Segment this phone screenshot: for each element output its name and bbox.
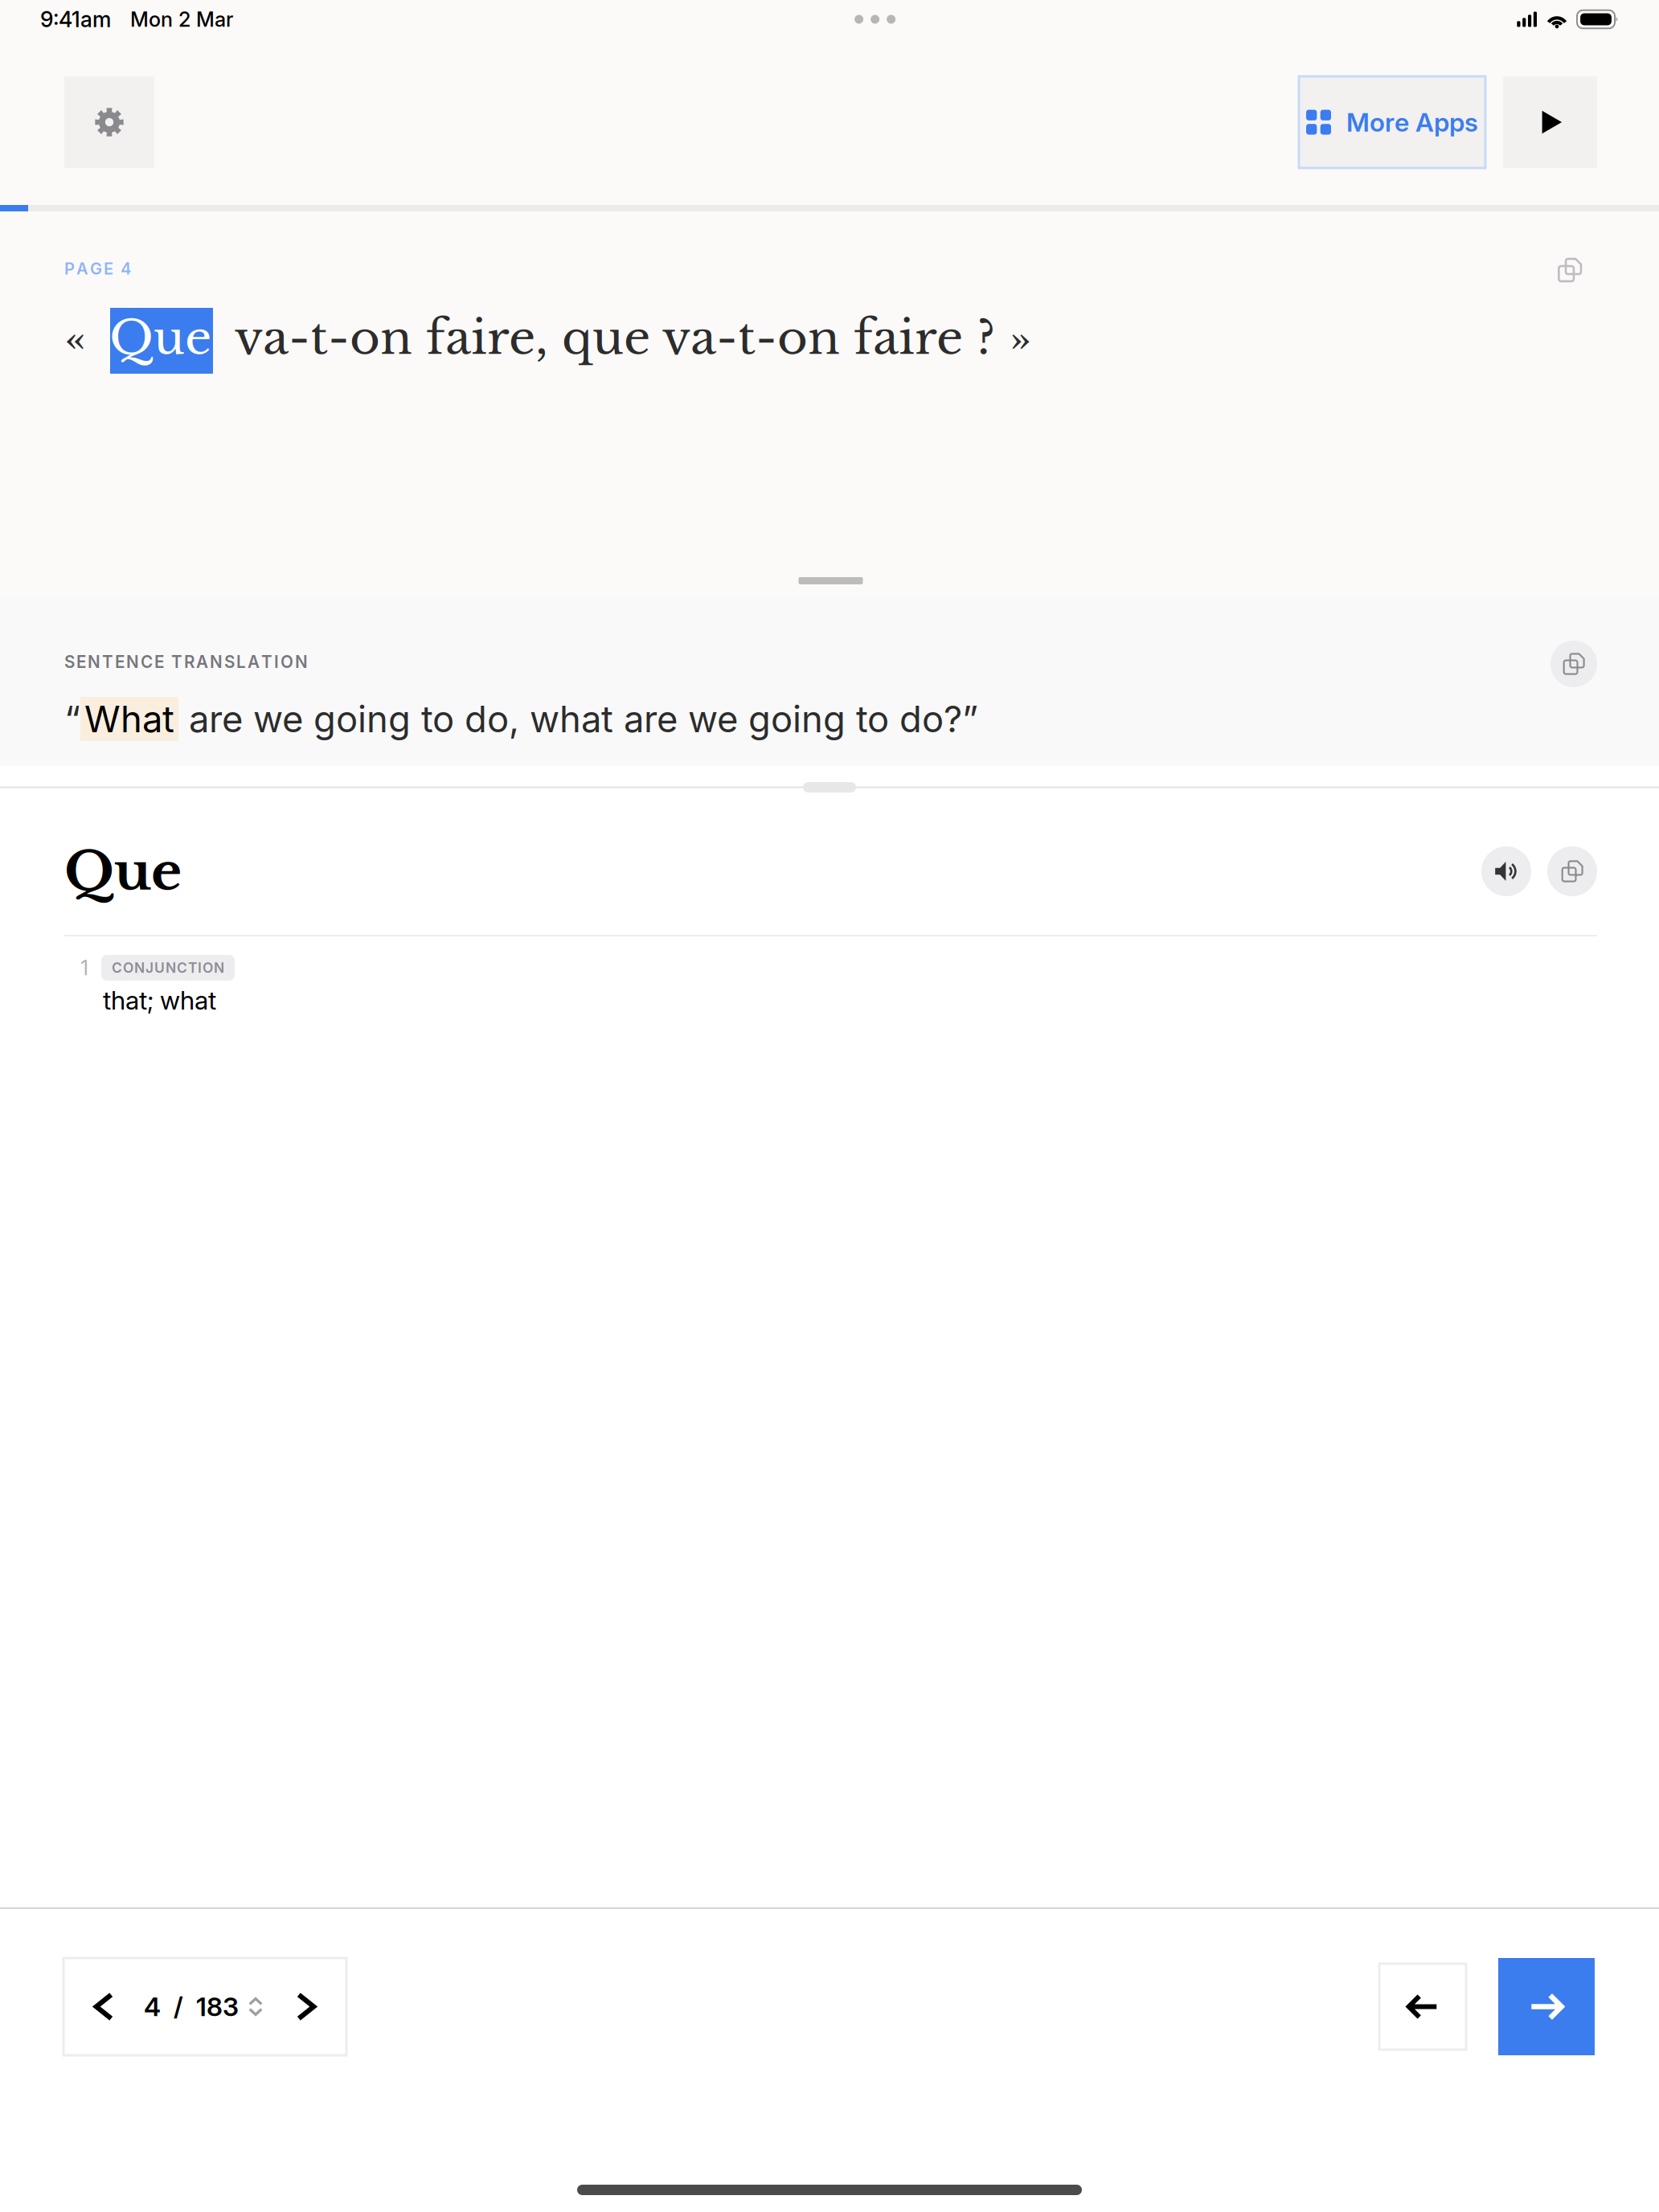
staticText: What [84,697,174,741]
button[interactable]: Play pronunciation [1481,846,1531,896]
button[interactable]: Back [1379,1964,1466,2050]
staticText: 4 / 183 [144,1991,239,2022]
staticText: « [64,309,110,366]
staticText: that; what [103,985,216,1016]
button[interactable]: Next page [266,1959,346,2054]
staticText: Que [109,309,211,366]
button[interactable]: Next [1498,1958,1595,2055]
staticText: Mon 2 Mar [130,7,233,32]
staticText: Que [64,839,182,904]
staticText: “ [64,697,80,741]
staticText: are we going to do, what are we going to… [178,697,978,741]
staticText: More Apps [1346,107,1478,138]
button[interactable]: Copy sentence [1550,252,1589,288]
button[interactable]: More Apps [1299,76,1485,168]
staticText: P A G E 4 [64,259,131,278]
button[interactable]: Play [1503,76,1597,168]
staticText: C O N J U N C T I O N [112,959,224,976]
button[interactable]: Copy word [1547,846,1597,896]
staticText: 1 [80,955,88,980]
button[interactable]: Settings [64,76,154,168]
staticText: 9:41am [40,6,111,32]
button[interactable]: Previous page [63,1959,144,2054]
button[interactable]: Copy translation [1550,641,1597,687]
staticText: va-t-on faire, que va-t-on faire ? » [213,309,1031,366]
staticText: S E N T E N C E T R A N S L A T I O N [64,652,308,672]
